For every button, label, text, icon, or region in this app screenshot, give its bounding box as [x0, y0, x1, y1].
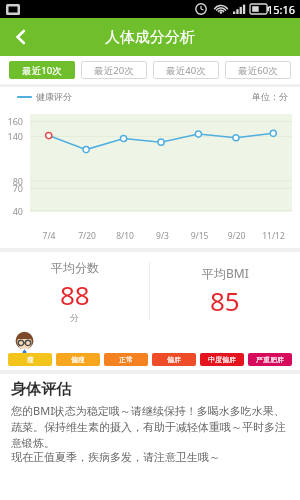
staticText: 平均分数: [51, 260, 99, 275]
button[interactable]: 最近10次: [9, 61, 75, 79]
staticText: 偏瘦: [71, 355, 85, 364]
staticText: 11/12: [255, 230, 292, 242]
staticText: 单位：分: [252, 91, 288, 102]
staticText: 8/10: [106, 230, 144, 242]
staticText: 最近60次: [238, 64, 278, 77]
staticText: 正常: [119, 355, 133, 364]
staticText: 9/3: [144, 230, 181, 242]
staticText: 88: [60, 277, 90, 312]
staticText: 平均BMI: [202, 265, 249, 281]
staticText: 70: [0, 182, 23, 194]
staticText: 中度偏胖: [208, 355, 236, 364]
staticText: 偏胖: [167, 355, 181, 364]
staticText: 85: [210, 283, 240, 318]
button[interactable]: 最近20次: [81, 61, 147, 79]
staticText: 最近10次: [22, 64, 62, 77]
button[interactable]: 偏瘦: [56, 353, 100, 366]
staticText: 健康评分: [36, 91, 72, 102]
staticText: 40: [0, 205, 23, 217]
staticText: 现在正值夏季，疾病多发，请注意卫生哦～: [11, 450, 220, 464]
button[interactable]: 平均BMI: [150, 252, 300, 330]
staticText: 瘦: [27, 355, 34, 364]
button[interactable]: 最近40次: [153, 61, 219, 79]
button[interactable]: 正常: [104, 353, 148, 366]
staticText: 最近40次: [166, 64, 206, 77]
staticText: 您的BMI状态为稳定哦～请继续保持！多喝水多吃水果、蔬菜。保持维生素的摄入，有助…: [11, 403, 291, 450]
staticText: 80: [0, 175, 23, 187]
button[interactable]: 瘦: [8, 353, 52, 366]
button[interactable]: 中度偏胖: [200, 353, 244, 366]
button[interactable]: Back: [0, 18, 42, 56]
staticText: 160: [0, 115, 23, 127]
staticText: 7/4: [30, 230, 68, 242]
staticText: 人体成分分析: [105, 28, 195, 47]
button[interactable]: 最近60次: [225, 61, 291, 79]
staticText: 最近20次: [94, 64, 134, 77]
staticText: 9/15: [181, 230, 218, 242]
button[interactable]: 严重肥胖: [248, 353, 292, 366]
staticText: 7/20: [68, 230, 106, 242]
staticText: 140: [0, 130, 23, 142]
staticText: 严重肥胖: [256, 355, 284, 364]
staticText: 9/20: [218, 230, 255, 242]
staticText: 15:16: [267, 2, 296, 17]
button[interactable]: 偏胖: [152, 353, 196, 366]
staticText: 分: [70, 312, 79, 323]
staticText: 身体评估: [11, 380, 71, 399]
button[interactable]: 平均分数: [0, 252, 149, 330]
